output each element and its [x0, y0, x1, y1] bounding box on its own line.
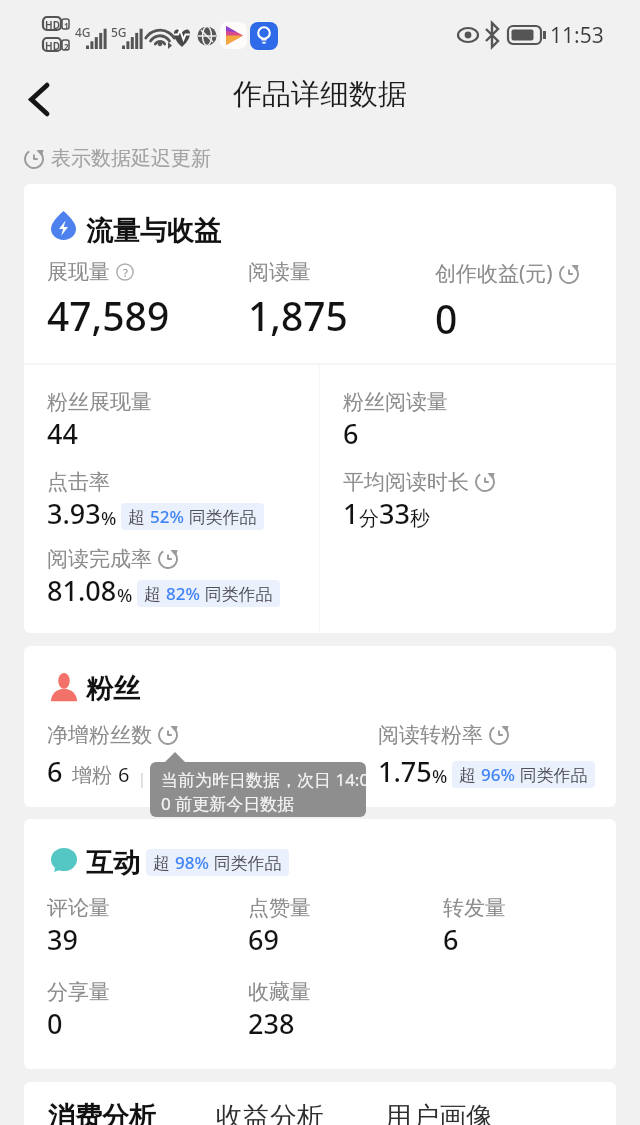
button[interactable]: 粉丝阅读量	[343, 389, 448, 452]
staticText: 点击率	[47, 469, 110, 495]
staticText: 6	[118, 761, 130, 788]
staticText: 评论量	[47, 895, 110, 921]
button[interactable]: 消费分析	[48, 1100, 156, 1125]
staticText: 81.08	[47, 572, 117, 609]
staticText: 掉粉	[154, 761, 200, 788]
staticText: 阅读转粉率	[378, 722, 483, 748]
staticText: HD	[45, 39, 60, 53]
button[interactable]: 阅读量	[248, 259, 348, 342]
staticText: 消费分析	[48, 1100, 156, 1125]
staticText: 11:53	[550, 21, 604, 50]
button[interactable]: Back	[16, 76, 62, 122]
staticText: 6	[47, 753, 63, 790]
staticText: 分	[359, 506, 379, 531]
button[interactable]: 分享量	[47, 979, 110, 1042]
staticText: 1	[343, 495, 359, 532]
staticText: 表示数据延迟更新	[51, 146, 211, 171]
staticText: 粉丝展现量	[47, 389, 152, 415]
staticText: 6	[443, 921, 459, 958]
button[interactable]: 展现量	[47, 259, 170, 342]
staticText: 超	[459, 763, 481, 786]
staticText: 同类作品	[515, 763, 588, 786]
staticText: 1	[64, 20, 69, 31]
staticText: %	[432, 764, 448, 789]
staticText: 33	[379, 495, 410, 532]
staticText: 收益分析	[216, 1100, 324, 1125]
staticText: 互动	[86, 846, 140, 880]
button[interactable]: About impressions	[116, 263, 134, 281]
staticText: 秒	[410, 506, 430, 531]
staticText: 用户画像	[385, 1100, 493, 1125]
staticText: 2	[64, 41, 69, 52]
button[interactable]: 收藏量	[248, 979, 311, 1042]
staticText: 当前为昨日数据，次日 14:0	[161, 768, 366, 791]
staticText: 同类作品	[200, 582, 273, 605]
staticText: 96%	[481, 763, 515, 786]
staticText: 82%	[166, 582, 200, 605]
staticText: 平均阅读时长	[343, 469, 469, 495]
staticText: 1,875	[248, 289, 348, 342]
staticText: 收藏量	[248, 979, 311, 1005]
staticText: 98%	[175, 851, 209, 874]
staticText: 1.75	[378, 753, 432, 790]
staticText: 阅读量	[248, 259, 311, 285]
button[interactable]: 表示数据延迟更新	[24, 146, 211, 171]
staticText: 5G	[111, 24, 127, 40]
staticText: 0	[47, 1005, 63, 1042]
staticText: 44	[47, 415, 78, 452]
staticText: 4G	[75, 24, 91, 40]
staticText: 3.93	[47, 495, 101, 532]
staticText: |	[130, 768, 154, 788]
staticText: 转发量	[443, 895, 506, 921]
staticText: 同类作品	[209, 851, 282, 874]
button[interactable]: 阅读完成率	[47, 546, 280, 609]
staticText: 点赞量	[248, 895, 311, 921]
button[interactable]: 创作收益(元)	[435, 259, 579, 345]
staticText: 作品详细数据	[233, 76, 407, 113]
staticText: 238	[248, 1005, 295, 1042]
staticText: 超	[128, 505, 150, 528]
button[interactable]: 评论量	[47, 895, 110, 958]
staticText: 展现量	[47, 259, 110, 285]
staticText: 增粉	[72, 761, 118, 788]
staticText: 净增粉丝数	[47, 722, 152, 748]
staticText: 52%	[150, 505, 184, 528]
staticText: 0	[435, 292, 458, 345]
staticText: 流量与收益	[86, 214, 221, 248]
staticText: 粉丝阅读量	[343, 389, 448, 415]
button[interactable]: 点赞量	[248, 895, 311, 958]
button[interactable]: 点击率	[47, 469, 264, 532]
staticText: 粉丝	[86, 672, 140, 706]
staticText: 6	[343, 415, 359, 452]
staticText: 47,589	[47, 289, 170, 342]
staticText: 同类作品	[184, 505, 257, 528]
button[interactable]: 转发量	[443, 895, 506, 958]
staticText: ?	[123, 265, 128, 280]
staticText: 创作收益(元)	[435, 259, 553, 288]
staticText: 分享量	[47, 979, 110, 1005]
staticText: 0 前更新今日数据	[161, 792, 295, 815]
staticText: 0	[200, 761, 212, 788]
button[interactable]: 粉丝展现量	[47, 389, 152, 452]
button[interactable]: 用户画像	[385, 1100, 493, 1125]
staticText: 超	[153, 851, 175, 874]
button[interactable]: 平均阅读时长	[343, 469, 495, 532]
staticText: 阅读完成率	[47, 546, 152, 572]
staticText: 39	[47, 921, 78, 958]
staticText: %	[101, 506, 117, 531]
button[interactable]: 收益分析	[216, 1100, 324, 1125]
staticText: %	[117, 583, 133, 608]
staticText: 69	[248, 921, 279, 958]
staticText: 超	[144, 582, 166, 605]
staticText: HD	[45, 18, 60, 32]
